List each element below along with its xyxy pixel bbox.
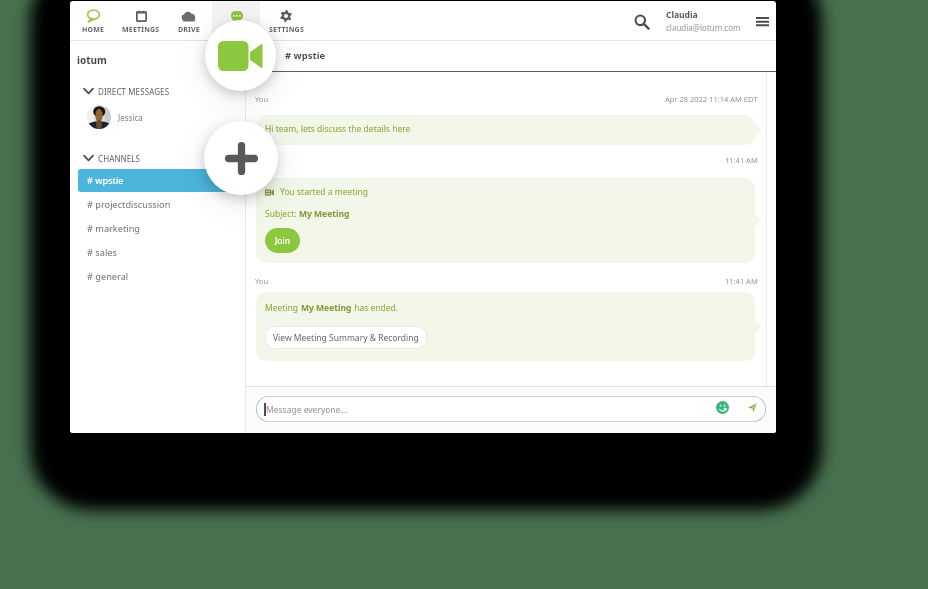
button[interactable]: Search bbox=[627, 9, 657, 35]
button[interactable]: HOME bbox=[70, 1, 117, 42]
staticText: You bbox=[255, 94, 269, 104]
button[interactable]: Message everyone... bbox=[256, 396, 766, 422]
button[interactable]: SETTINGS bbox=[262, 1, 310, 42]
button[interactable]: View Meeting Summary & Recording bbox=[265, 326, 427, 349]
staticText: claudia@iotum.com bbox=[666, 22, 741, 33]
button[interactable]: Send bbox=[744, 397, 761, 417]
staticText: View Meeting Summary & Recording bbox=[273, 332, 419, 344]
staticText: # wpstie bbox=[285, 49, 326, 62]
staticText: # wpstie bbox=[87, 174, 124, 187]
button[interactable]: Menu bbox=[752, 10, 772, 32]
staticText: My Meeting bbox=[301, 302, 352, 314]
staticText: MEETINGS bbox=[122, 25, 160, 35]
staticText: Message everyone... bbox=[266, 404, 348, 416]
button[interactable]: # wpstie bbox=[78, 169, 238, 192]
button[interactable]: # general bbox=[78, 265, 238, 288]
button[interactable]: # projectdiscussion bbox=[78, 193, 238, 216]
staticText: # sales bbox=[87, 246, 117, 259]
staticText: SETTINGS bbox=[269, 25, 304, 35]
staticText: Jessica bbox=[118, 112, 143, 123]
staticText: You started a meeting bbox=[280, 186, 368, 198]
staticText: 11:41 AM bbox=[725, 276, 758, 286]
staticText: # marketing bbox=[87, 222, 140, 235]
button[interactable]: DIRECT MESSAGES bbox=[70, 82, 246, 100]
button[interactable]: # sales bbox=[78, 241, 238, 264]
button[interactable]: Chat bbox=[213, 1, 261, 42]
button[interactable]: Join bbox=[265, 228, 300, 253]
button[interactable]: Claudia bbox=[663, 8, 755, 35]
staticText: # general bbox=[87, 270, 129, 283]
staticText: 11:41 AM bbox=[725, 155, 758, 165]
button[interactable]: MEETINGS bbox=[117, 1, 165, 42]
button[interactable]: CHANNELS bbox=[70, 149, 246, 167]
button[interactable]: # marketing bbox=[78, 217, 238, 240]
button[interactable]: Add bbox=[204, 121, 278, 195]
button[interactable]: Jessica bbox=[70, 104, 246, 130]
staticText: iotum bbox=[77, 53, 107, 67]
staticText: Apr 28 2022 11:14 AM EDT bbox=[665, 94, 758, 104]
button[interactable]: Emoji bbox=[713, 397, 732, 417]
button[interactable]: Start video meeting bbox=[205, 20, 276, 91]
staticText: CHANNELS bbox=[98, 153, 141, 164]
staticText: Subject: bbox=[265, 208, 299, 220]
staticText: DIRECT MESSAGES bbox=[98, 86, 170, 97]
staticText: has ended. bbox=[352, 302, 399, 314]
staticText: You bbox=[255, 276, 269, 286]
staticText: HOME bbox=[82, 25, 105, 35]
staticText: My Meeting bbox=[299, 208, 350, 220]
staticText: DRIVE bbox=[178, 25, 200, 35]
staticText: Meeting bbox=[265, 302, 301, 314]
staticText: Join bbox=[275, 235, 290, 247]
staticText: Hi team, lets discuss the details here bbox=[265, 123, 411, 135]
button[interactable]: DRIVE bbox=[165, 1, 213, 42]
staticText: Claudia bbox=[666, 9, 698, 21]
staticText: # projectdiscussion bbox=[87, 198, 171, 211]
